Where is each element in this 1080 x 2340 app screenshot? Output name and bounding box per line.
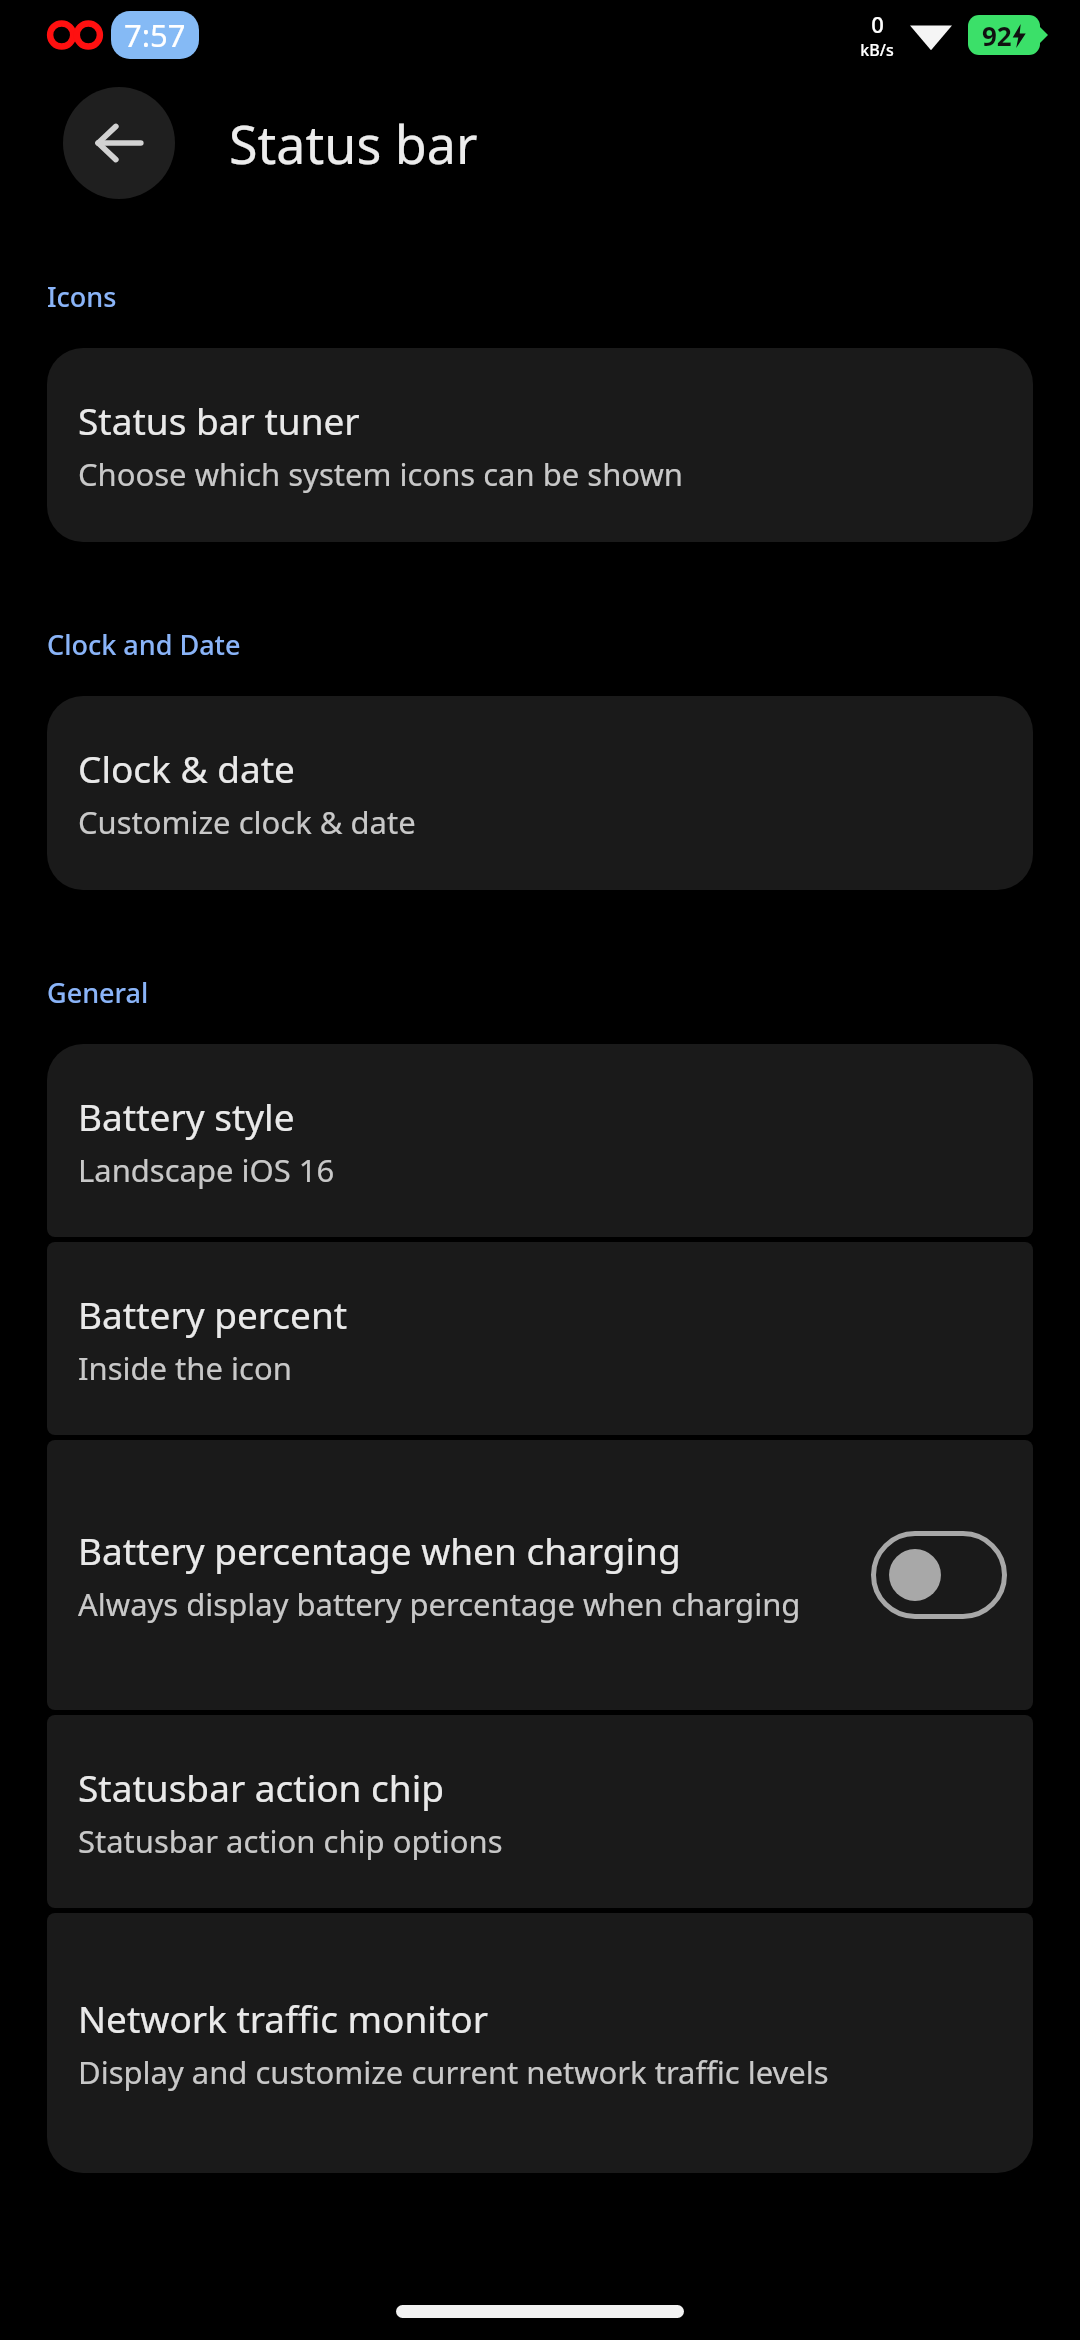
staticText: Statusbar action chip [78,1762,445,1812]
staticText: 0 [871,9,884,39]
staticText: Landscape iOS 16 [78,1149,335,1191]
button[interactable]: Battery style [47,1044,1033,1237]
button[interactable]: Back [63,87,175,199]
button[interactable]: Status bar tuner [47,348,1033,542]
staticText: kB/s [860,39,894,61]
button[interactable]: Statusbar action chip [47,1715,1033,1908]
staticText: Clock & date [78,743,295,793]
button[interactable]: Clock & date [47,696,1033,890]
button[interactable]: Network traffic monitor [47,1913,1033,2173]
staticText: Display and customize current network tr… [78,2051,829,2093]
staticText: Battery style [78,1091,295,1141]
staticText: Customize clock & date [78,801,416,843]
staticText: Battery percentage when charging [78,1525,681,1575]
staticText: General [47,974,149,1011]
staticText: Choose which system icons can be shown [78,453,683,495]
staticText: 92 [982,18,1012,53]
staticText: Inside the icon [78,1347,292,1389]
staticText: Icons [47,278,117,315]
button[interactable]: Battery percentage when charging [47,1440,1033,1710]
button[interactable]: Toggle battery percentage when charging [871,1531,1007,1619]
staticText: 7:57 [124,14,186,56]
staticText: Battery percent [78,1289,348,1339]
staticText: Always display battery percentage when c… [78,1583,801,1625]
staticText: Status bar tuner [78,395,360,445]
staticText: Clock and Date [47,626,241,663]
staticText: Statusbar action chip options [78,1820,503,1862]
button[interactable]: Battery percent [47,1242,1033,1435]
staticText: Network traffic monitor [78,1993,488,2043]
staticText: Status bar [229,108,478,179]
